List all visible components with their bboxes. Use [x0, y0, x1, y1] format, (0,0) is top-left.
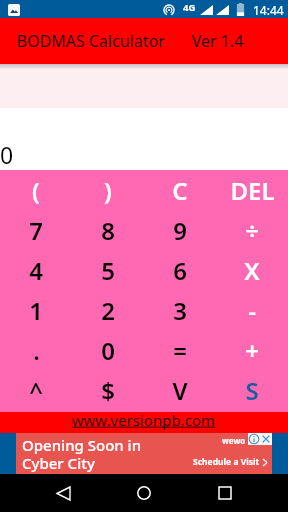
- button[interactable]: (: [0, 170, 72, 210]
- staticText: 0: [0, 139, 14, 170]
- staticText: 5: [101, 254, 115, 287]
- staticText: Opening Soon in: [22, 435, 142, 455]
- button[interactable]: S: [216, 370, 288, 410]
- button[interactable]: DEL: [216, 170, 288, 210]
- button[interactable]: C: [144, 170, 216, 210]
- button[interactable]: 6: [144, 250, 216, 290]
- button[interactable]: X: [216, 250, 288, 290]
- staticText: Schedule a Visit: [193, 456, 260, 468]
- staticText: =: [173, 334, 187, 367]
- staticText: ^: [29, 374, 43, 407]
- button[interactable]: =: [144, 330, 216, 370]
- staticText: X: [244, 254, 260, 287]
- button[interactable]: Home: [126, 475, 162, 511]
- staticText: 4G: [183, 1, 196, 14]
- button[interactable]: www.versionpb.com: [0, 412, 288, 433]
- button[interactable]: 4: [0, 250, 72, 290]
- staticText: (: [32, 174, 40, 207]
- button[interactable]: 0: [72, 330, 144, 370]
- staticText: www.versionpb.com: [72, 410, 216, 430]
- button[interactable]: +: [216, 330, 288, 370]
- staticText: 0: [101, 334, 115, 367]
- button[interactable]: ÷: [216, 210, 288, 250]
- button[interactable]: Opening Soon in: [0, 433, 288, 474]
- staticText: Cyber City: [22, 453, 95, 472]
- staticText: 2: [101, 294, 115, 327]
- button[interactable]: .: [0, 330, 72, 370]
- button[interactable]: 2: [72, 290, 144, 330]
- button[interactable]: V: [144, 370, 216, 410]
- staticText: 4: [29, 254, 43, 287]
- staticText: +: [245, 334, 259, 367]
- button[interactable]: Recent apps: [207, 475, 243, 511]
- staticText: 3: [173, 294, 187, 327]
- button[interactable]: 8: [72, 210, 144, 250]
- staticText: C: [172, 174, 188, 207]
- staticText: ): [104, 174, 112, 207]
- button[interactable]: 5: [72, 250, 144, 290]
- staticText: ÷: [245, 214, 259, 247]
- button[interactable]: 3: [144, 290, 216, 330]
- staticText: wewo: [222, 435, 246, 446]
- staticText: .: [33, 334, 40, 367]
- staticText: 6: [173, 254, 187, 287]
- button[interactable]: Back: [45, 475, 81, 511]
- button[interactable]: Schedule a Visit: [193, 456, 267, 468]
- button[interactable]: ): [72, 170, 144, 210]
- button[interactable]: Ad info and close: [248, 433, 272, 445]
- button[interactable]: 7: [0, 210, 72, 250]
- staticText: 7: [29, 214, 43, 247]
- staticText: 9: [173, 214, 187, 247]
- staticText: S: [245, 374, 259, 407]
- staticText: V: [172, 374, 188, 407]
- staticText: $: [101, 374, 115, 407]
- button[interactable]: 1: [0, 290, 72, 330]
- staticText: DEL: [230, 174, 275, 207]
- button[interactable]: 9: [144, 210, 216, 250]
- button[interactable]: ^: [0, 370, 72, 410]
- button[interactable]: -: [216, 290, 288, 330]
- staticText: BODMAS Calculator: [17, 30, 166, 52]
- staticText: 8: [101, 214, 115, 247]
- button[interactable]: $: [72, 370, 144, 410]
- staticText: 1: [29, 294, 43, 327]
- staticText: Ver 1.4: [192, 30, 244, 52]
- staticText: -: [248, 294, 256, 327]
- staticText: 14:44: [253, 2, 284, 18]
